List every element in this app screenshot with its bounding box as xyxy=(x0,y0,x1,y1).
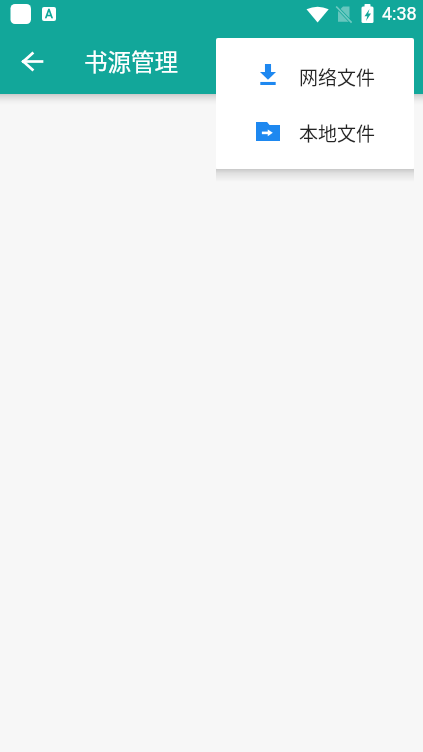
button[interactable]: Back xyxy=(8,37,56,85)
staticText: 本地文件 xyxy=(299,119,376,147)
staticText: A xyxy=(42,7,56,21)
staticText: 网络文件 xyxy=(299,63,376,91)
staticText: 书源管理 xyxy=(84,44,178,78)
button[interactable]: 本地文件 xyxy=(216,104,414,161)
staticText: 4:38 xyxy=(382,3,417,24)
button[interactable]: 网络文件 xyxy=(216,48,414,105)
